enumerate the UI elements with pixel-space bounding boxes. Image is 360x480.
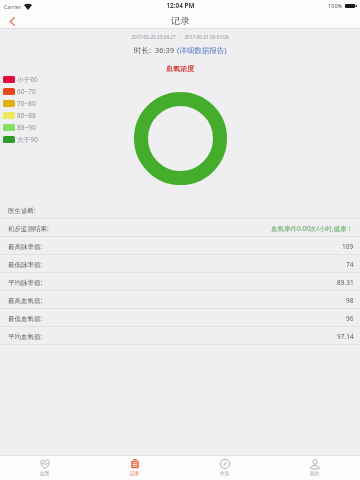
button[interactable]: 平均血氧值: — [0, 327, 360, 345]
staticText: 监测 — [40, 471, 50, 477]
staticText: 我的 — [310, 471, 320, 477]
staticText: 时长: 36:39 — [134, 45, 177, 55]
button[interactable]: 平均脉率值: — [0, 273, 360, 291]
staticText: 交流 — [220, 471, 230, 477]
staticText: Carrier — [4, 3, 21, 10]
staticText: 60~70 — [17, 87, 36, 96]
staticText: 74 — [346, 260, 354, 269]
button[interactable]: (详细数据报告) — [177, 45, 227, 55]
button[interactable]: 最高脉率值: — [0, 237, 360, 255]
staticText: 记录 — [171, 15, 190, 27]
button[interactable]: 记录 — [90, 456, 180, 480]
button[interactable]: 我的 — [270, 456, 360, 480]
button[interactable]: 最低脉率值: — [0, 255, 360, 273]
button[interactable]: 最低血氧值: — [0, 309, 360, 327]
button[interactable]: Back — [0, 13, 24, 29]
staticText: 血氧浓度 — [0, 64, 360, 73]
button[interactable]: 最高血氧值: — [0, 291, 360, 309]
staticText: 89.31 — [337, 278, 354, 287]
staticText: 80~88 — [17, 111, 36, 120]
staticText: 88~90 — [17, 123, 36, 132]
staticText: 2017-06-20 23:24:27 - 2017-06-21 00:01:0… — [0, 34, 360, 40]
staticText: 血氧事件0.00次/小时,健康！ — [271, 224, 354, 233]
staticText: 100% — [328, 2, 343, 10]
staticText: 最高脉率值: — [8, 242, 43, 251]
staticText: 平均脉率值: — [8, 278, 43, 287]
staticText: 最高血氧值: — [8, 296, 43, 305]
staticText: 医生诊断: — [8, 206, 36, 215]
button[interactable]: 医生诊断: — [0, 201, 360, 219]
staticText: 最低脉率值: — [8, 260, 43, 269]
button[interactable]: 监测 — [0, 456, 90, 480]
staticText: 最低血氧值: — [8, 314, 43, 323]
staticText: 12:04 PM — [166, 1, 195, 10]
staticText: 平均血氧值: — [8, 332, 43, 341]
staticText: 70~80 — [17, 99, 36, 108]
staticText: 97.14 — [337, 332, 354, 341]
staticText: 96 — [346, 314, 354, 323]
staticText: 记录 — [130, 471, 140, 477]
staticText: 109 — [342, 242, 354, 251]
staticText: 98 — [346, 296, 354, 305]
button[interactable]: 交流 — [180, 456, 270, 480]
staticText: 小于60 — [17, 75, 38, 84]
staticText: 大于90 — [17, 135, 38, 144]
button[interactable]: 初步监测结果: — [0, 219, 360, 237]
staticText: 初步监测结果: — [8, 224, 49, 233]
